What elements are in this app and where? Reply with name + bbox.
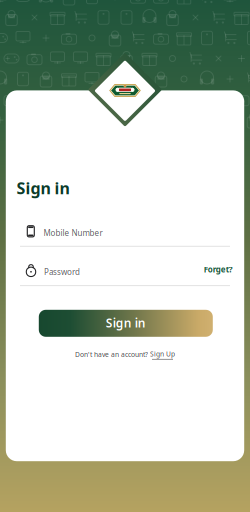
staticText: Sign in xyxy=(16,177,69,199)
button[interactable]: Sign Up xyxy=(150,349,175,360)
staticText: Mobile Number xyxy=(43,228,102,238)
staticText: Sign in xyxy=(106,315,146,331)
staticText: Don't have an account? xyxy=(75,350,150,359)
staticText: Password xyxy=(44,267,80,277)
staticText: Sign Up xyxy=(150,349,175,358)
button[interactable]: Sign in xyxy=(39,310,213,337)
button[interactable]: Forget? xyxy=(198,262,238,277)
staticText: Forget? xyxy=(204,264,233,275)
